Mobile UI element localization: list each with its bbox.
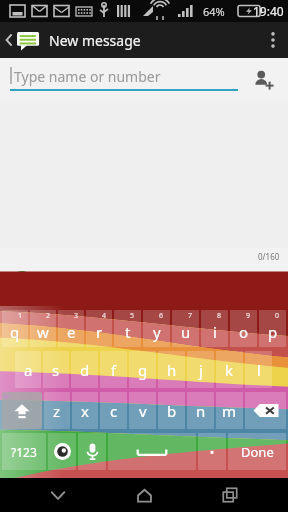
button[interactable]: 0 <box>259 310 286 347</box>
button[interactable]: Recent apps <box>202 478 258 512</box>
staticText: s <box>52 360 60 380</box>
staticText: a <box>24 360 33 380</box>
staticText: 64% <box>203 4 225 19</box>
staticText: k <box>225 360 234 380</box>
button[interactable]: x <box>72 392 98 429</box>
staticText: f <box>111 360 117 380</box>
staticText: w <box>37 322 49 342</box>
button[interactable]: k <box>216 351 243 388</box>
button[interactable]: 4 <box>86 310 112 347</box>
button[interactable]: Back to messages <box>0 29 147 51</box>
staticText: 0 <box>275 311 280 321</box>
staticText: 2 <box>46 311 51 321</box>
staticText: 8 <box>217 311 222 321</box>
button[interactable]: 8 <box>201 310 228 347</box>
staticText: ?123 <box>11 444 37 460</box>
staticText: o <box>239 322 249 342</box>
staticText: x <box>81 401 89 421</box>
staticText: y <box>153 322 161 342</box>
staticText: e <box>67 322 76 342</box>
staticText: 3 <box>74 311 79 321</box>
button[interactable]: z <box>44 392 70 429</box>
staticText: 6 <box>159 311 164 321</box>
button[interactable]: Home <box>116 478 172 512</box>
button[interactable]: c <box>100 392 127 429</box>
button[interactable]: Voice input <box>78 433 106 470</box>
button[interactable]: Space <box>108 433 196 470</box>
button[interactable]: 3 <box>58 310 84 347</box>
staticText: p <box>268 322 278 342</box>
staticText: m <box>222 401 237 421</box>
staticText: j <box>199 360 203 380</box>
staticText: 4 <box>102 311 107 321</box>
staticText: 5 <box>130 311 135 321</box>
button[interactable]: h <box>158 351 185 388</box>
button[interactable]: 6 <box>143 310 170 347</box>
staticText: h <box>167 360 177 380</box>
staticText: 9 <box>246 311 251 321</box>
staticText: t <box>125 322 131 342</box>
staticText: New message <box>49 31 141 50</box>
staticText: 19:40 <box>253 3 284 19</box>
button[interactable]: Backspace <box>245 392 286 429</box>
button[interactable]: Add contact <box>246 62 280 96</box>
button[interactable]: Hide keyboard <box>30 478 86 512</box>
button[interactable]: Send message <box>246 263 284 301</box>
staticText: q <box>10 322 20 342</box>
button[interactable]: 2 <box>30 310 56 347</box>
button[interactable]: Add attachment <box>6 266 38 298</box>
staticText: z <box>53 401 61 421</box>
button[interactable]: f <box>100 351 127 388</box>
button[interactable]: 5 <box>114 310 141 347</box>
button[interactable]: Period <box>198 433 226 470</box>
staticText: 1 <box>18 311 23 321</box>
staticText: c <box>110 401 118 421</box>
button[interactable]: ?123 <box>2 433 46 470</box>
button[interactable]: j <box>187 351 214 388</box>
button[interactable]: g <box>129 351 156 388</box>
button[interactable]: v <box>129 392 156 429</box>
button[interactable]: s <box>43 351 69 388</box>
staticText: n <box>196 401 206 421</box>
staticText: 0/160 <box>258 251 280 262</box>
button[interactable]: More options <box>258 22 288 58</box>
staticText: u <box>181 322 191 342</box>
button[interactable]: b <box>158 392 185 429</box>
button[interactable]: l <box>245 351 272 388</box>
button[interactable]: Done <box>228 433 286 470</box>
staticText: r <box>96 322 103 342</box>
staticText: d <box>80 360 90 380</box>
staticText: b <box>167 401 177 421</box>
button[interactable]: 9 <box>230 310 257 347</box>
staticText: i <box>213 322 217 342</box>
button[interactable]: m <box>216 392 243 429</box>
button[interactable]: a <box>15 351 41 388</box>
staticText: v <box>139 401 147 421</box>
button[interactable]: Keyboard settings <box>48 433 76 470</box>
button[interactable]: Type text message <box>42 270 165 289</box>
button[interactable]: Type name or number <box>10 67 238 91</box>
staticText: Done <box>241 443 274 461</box>
staticText: Type name or number <box>14 67 161 86</box>
button[interactable]: n <box>187 392 214 429</box>
button[interactable]: d <box>71 351 98 388</box>
button[interactable]: 7 <box>172 310 199 347</box>
staticText: 7 <box>188 311 193 321</box>
staticText: g <box>138 360 148 380</box>
button[interactable]: 1 <box>2 310 28 347</box>
button[interactable]: Shift <box>2 392 42 429</box>
staticText: l <box>257 360 261 380</box>
